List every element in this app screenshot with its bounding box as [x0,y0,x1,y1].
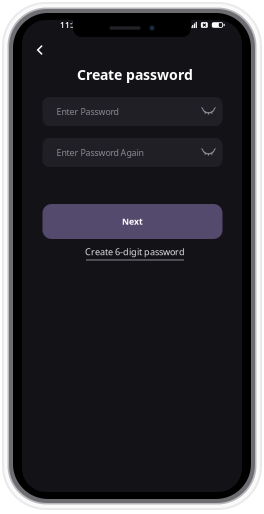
staticText: Create 6-digit password [85,246,185,258]
button[interactable]: Enter Password Again [42,138,222,167]
staticText: Enter Password [56,105,118,117]
button[interactable]: Enter Password [42,97,222,126]
staticText: 11:21 [60,20,82,30]
staticText: Next [122,216,143,227]
button[interactable]: Create 6-digit password [85,246,185,260]
button[interactable]: Next [42,204,222,239]
staticText: Enter Password Again [56,146,143,158]
button[interactable]: Back [27,36,52,64]
staticText: Create password [77,65,193,84]
